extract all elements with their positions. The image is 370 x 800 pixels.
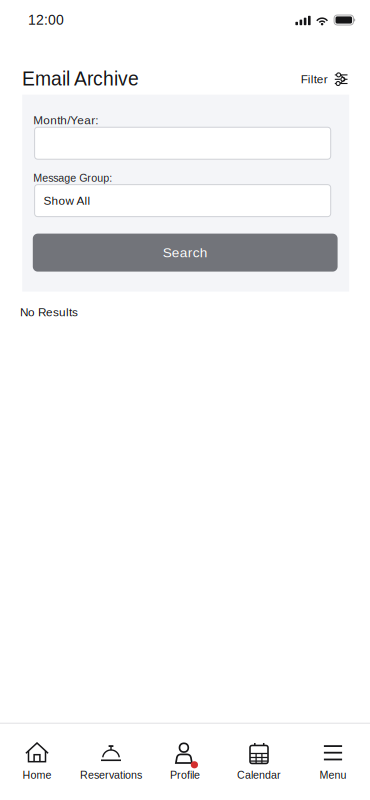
staticText: Calendar xyxy=(237,769,281,781)
button[interactable]: Home xyxy=(0,724,74,800)
button[interactable]: Menu xyxy=(296,724,370,800)
button[interactable]: Reservations xyxy=(74,724,148,800)
staticText: Filter xyxy=(301,73,328,86)
button[interactable]: Search xyxy=(33,234,338,272)
button[interactable]: Profile xyxy=(148,724,222,800)
button[interactable]: Calendar xyxy=(222,724,296,800)
button[interactable]: Filter xyxy=(301,68,348,86)
button[interactable]: Show All xyxy=(35,185,349,217)
staticText: 12:00 xyxy=(28,12,64,28)
staticText: Profile xyxy=(170,769,200,781)
staticText: Email Archive xyxy=(22,68,139,90)
button[interactable]: Month/Year xyxy=(35,127,349,159)
staticText: Show All xyxy=(44,194,91,207)
staticText: Home xyxy=(22,769,51,781)
staticText: Reservations xyxy=(80,769,142,781)
staticText: Month/Year: xyxy=(33,114,98,127)
staticText: No Results xyxy=(20,306,78,319)
staticText: Menu xyxy=(319,769,346,781)
staticText: Message Group: xyxy=(33,172,112,184)
staticText: Search xyxy=(163,245,208,260)
